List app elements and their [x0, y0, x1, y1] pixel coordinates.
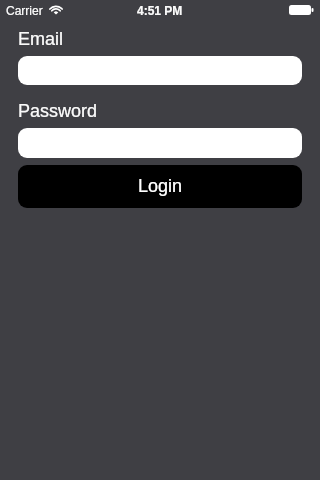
staticText: Password — [18, 101, 98, 121]
staticText: Email — [18, 29, 64, 49]
staticText: Carrier — [6, 4, 43, 17]
staticText: 4:51 PM — [137, 4, 183, 17]
button[interactable] — [18, 128, 302, 158]
button[interactable] — [18, 56, 302, 85]
button[interactable]: Login — [18, 165, 302, 208]
staticText: Login — [138, 176, 183, 196]
